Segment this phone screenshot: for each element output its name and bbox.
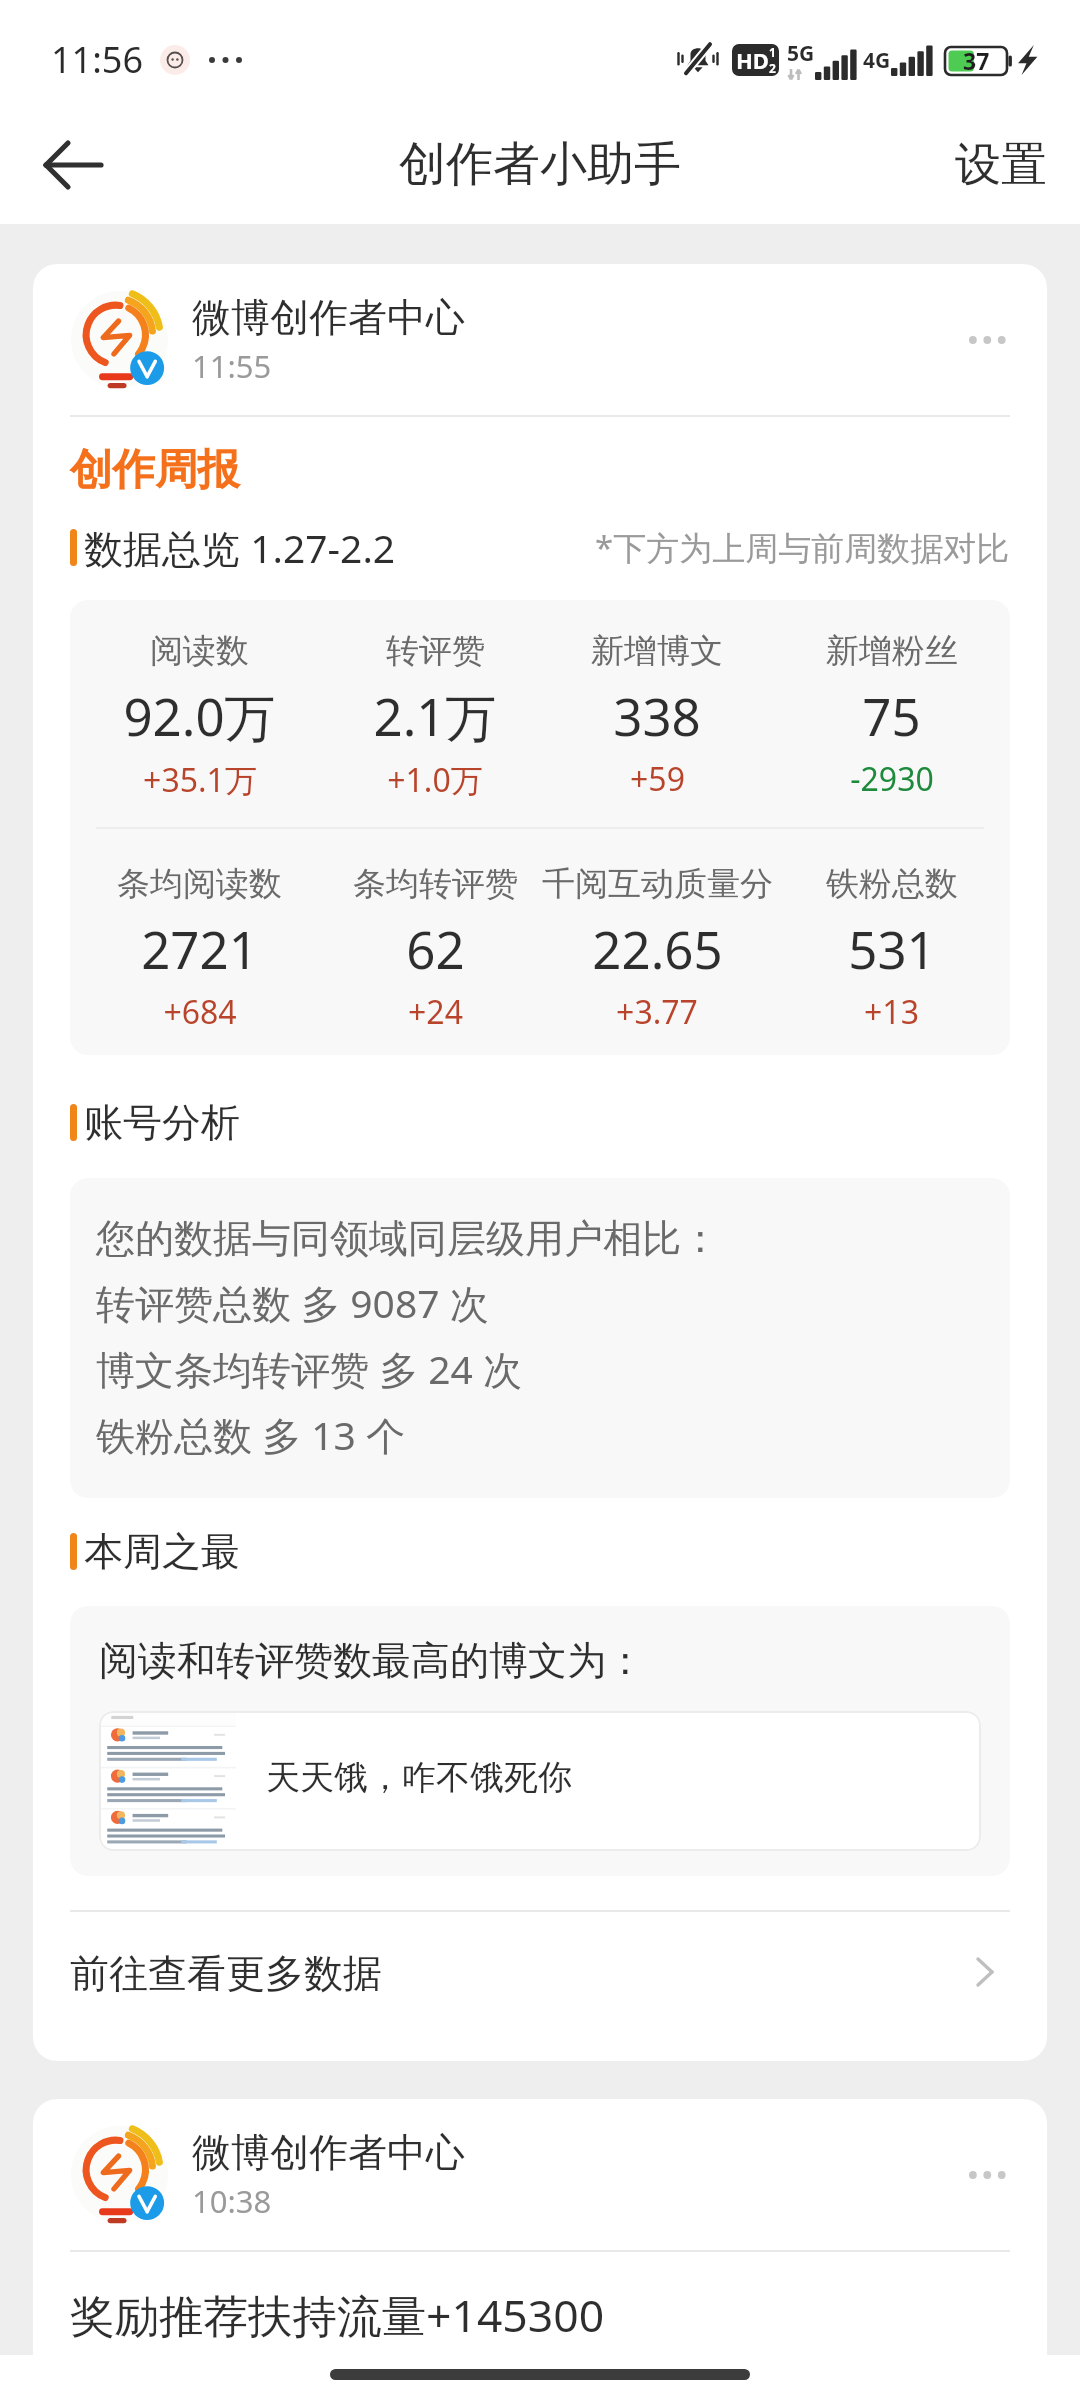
staticText: 奖励推荐扶持流量+145300 [70,2284,605,2345]
staticText: 2721 [141,914,258,983]
staticText: 338 [613,681,701,750]
staticText: 创作者小助手 [399,135,681,194]
staticText: 2 [769,60,776,76]
staticText: +3.77 [616,990,698,1034]
button[interactable]: 天天饿，咋不饿死你 [99,1711,981,1851]
staticText: +13 [864,990,919,1034]
staticText: 您的数据与同领域同层级用户相比： 转评赞总数 多 9087 次 博文条均转评赞 … [96,1214,720,1461]
button[interactable]: More options [949,321,1010,359]
staticText: 531 [848,914,936,983]
staticText: 22.65 [592,914,723,983]
staticText: 账号分析 [84,1098,240,1147]
staticText: 千阅互动质量分 [542,863,773,905]
staticText: 条均转评赞 [353,863,518,905]
staticText: 数据总览 1.27-2.2 [84,521,396,574]
staticText: 11:55 [192,345,272,387]
button[interactable]: 前往查看更多数据 [33,1912,1047,2061]
staticText: 前往查看更多数据 [70,1949,382,1998]
staticText: 新增粉丝 [826,630,958,672]
staticText: 铁粉总数 [826,863,958,905]
staticText: +35.1万 [143,758,257,802]
staticText: 条均阅读数 [117,863,282,905]
staticText: 1 [769,44,776,60]
staticText: +24 [408,990,463,1034]
staticText: 设置 [955,136,1047,194]
staticText: 4G [863,46,891,75]
staticText: 10:38 [192,2180,272,2222]
staticText: 75 [862,681,921,750]
staticText: 2.1万 [373,681,497,751]
staticText: 天天饿，咋不饿死你 [266,1756,572,1799]
staticText: 微博创作者中心 [192,2128,465,2177]
staticText: 5G [787,39,815,68]
staticText: 本周之最 [84,1527,240,1576]
staticText: 新增博文 [591,630,723,672]
staticText: 62 [406,914,465,983]
staticText: *下方为上周与前周数据对比 [595,525,1010,570]
staticText: 37 [963,45,990,76]
staticText: 创作周报 [70,443,240,497]
staticText: 92.0万 [123,681,276,751]
staticText: -2930 [850,757,934,801]
staticText: 11:56 [51,35,144,84]
button[interactable]: 设置 [922,106,1080,224]
staticText: 阅读和转评赞数最高的博文为： [99,1636,645,1685]
button[interactable]: More options [949,2156,1010,2194]
staticText: 转评赞 [386,630,485,672]
staticText: +1.0万 [387,758,483,802]
staticText: HD [736,45,769,75]
staticText: 微博创作者中心 [192,293,465,342]
staticText: +59 [630,757,685,801]
staticText: 阅读数 [150,630,249,672]
staticText: +684 [163,990,237,1034]
button[interactable]: Back [18,109,128,221]
